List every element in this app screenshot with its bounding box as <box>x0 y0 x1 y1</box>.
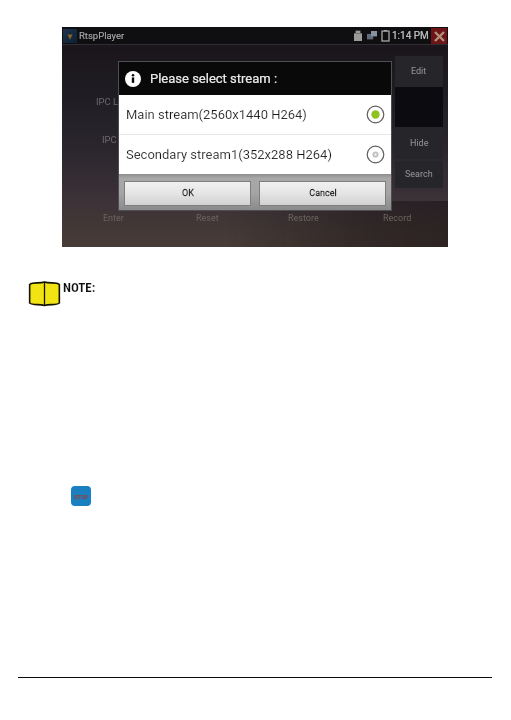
button[interactable]: Record <box>373 211 421 226</box>
staticText: Cancel <box>309 188 337 199</box>
staticText: IPC L <box>96 96 119 107</box>
staticText: NOTE: <box>63 280 96 295</box>
button[interactable]: Edit <box>395 56 443 87</box>
button[interactable]: Enter <box>89 211 137 226</box>
staticText: Reset <box>196 213 219 224</box>
button[interactable]: Reset <box>183 211 231 226</box>
staticText: RTSP <box>74 493 89 500</box>
staticText: 1:14 PM <box>392 30 429 42</box>
staticText: IPC <box>102 134 117 145</box>
button[interactable]: Cancel <box>260 182 385 205</box>
staticText: OK <box>182 188 194 199</box>
staticText: Hide <box>410 138 429 149</box>
staticText: Please select stream : <box>150 71 278 86</box>
button[interactable]: Secondary stream1(352x288 H264) <box>119 135 391 174</box>
button[interactable]: RTSP Player app icon <box>71 486 91 506</box>
staticText: Restore <box>288 213 319 224</box>
button[interactable]: Search <box>395 161 443 188</box>
staticText: Enter <box>103 213 124 224</box>
button[interactable]: Restore <box>279 211 327 226</box>
staticText: Search <box>405 169 433 180</box>
staticText: Secondary stream1(352x288 H264) <box>126 147 332 162</box>
button[interactable]: Close <box>431 28 447 44</box>
staticText: Edit <box>411 66 427 77</box>
staticText: RtspPlayer <box>79 30 125 41</box>
button[interactable]: OK <box>125 182 250 205</box>
staticText: Main stream(2560x1440 H264) <box>126 107 307 122</box>
staticText: Record <box>383 213 412 224</box>
button[interactable]: Hide <box>395 127 443 159</box>
button[interactable]: Main stream(2560x1440 H264) <box>119 95 391 134</box>
